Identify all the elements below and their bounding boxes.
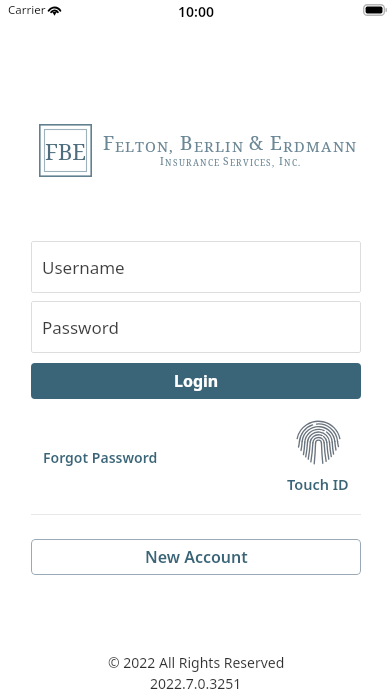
staticText: E [230, 157, 236, 168]
staticText: R [283, 136, 294, 156]
staticText: L [215, 136, 225, 156]
staticText: E [260, 157, 266, 168]
staticText: S [173, 157, 179, 168]
button[interactable]: Login [31, 363, 361, 399]
staticText: N [157, 136, 169, 156]
staticText: N [200, 157, 208, 168]
staticText: R [204, 136, 215, 156]
staticText: R [186, 157, 193, 168]
staticText: V [243, 157, 250, 168]
staticText: E [214, 157, 220, 168]
staticText: F [103, 130, 115, 156]
staticText: D [294, 136, 306, 156]
staticText: T [135, 136, 145, 156]
staticText: , [272, 157, 275, 168]
staticText: C [292, 157, 298, 168]
button[interactable]: Username [31, 241, 361, 293]
staticText: Password [42, 316, 119, 339]
staticText: C [254, 157, 260, 168]
staticText: N [345, 136, 357, 156]
staticText: E [270, 130, 283, 156]
staticText: L [125, 136, 135, 156]
staticText: Touch ID [287, 474, 349, 494]
button[interactable]: New Account [31, 539, 361, 575]
staticText: O [145, 136, 157, 156]
staticText: S [266, 157, 272, 168]
button[interactable]: Forgot Password [36, 444, 165, 471]
staticText: N [333, 136, 345, 156]
staticText: © 2022 All Rights Reserved [108, 653, 285, 672]
staticText: N [232, 136, 244, 156]
staticText: & [249, 130, 264, 156]
staticText: E [115, 136, 125, 156]
staticText: Username [42, 256, 125, 279]
staticText: I [225, 136, 232, 156]
staticText: R [236, 157, 243, 168]
staticText: U [179, 157, 186, 168]
staticText: Forgot Password [43, 448, 158, 467]
staticText: I [250, 157, 254, 168]
staticText: . [298, 157, 301, 168]
staticText: I [279, 154, 284, 168]
staticText: S [223, 154, 230, 168]
staticText: A [193, 157, 200, 168]
staticText: M [306, 136, 321, 156]
button[interactable]: Password [31, 301, 361, 353]
staticText: E [194, 136, 204, 156]
staticText: N [284, 157, 292, 168]
staticText: B [180, 130, 194, 156]
staticText: Carrier [8, 2, 46, 18]
staticText: , [169, 136, 174, 156]
staticText: N [165, 157, 173, 168]
staticText: A [321, 136, 333, 156]
staticText: 2022.7.0.3251 [150, 674, 242, 693]
staticText: FBE [45, 136, 87, 166]
staticText: I [160, 154, 165, 168]
staticText: New Account [145, 546, 248, 568]
staticText: C [208, 157, 214, 168]
staticText: Login [174, 370, 219, 392]
staticText: 10:00 [178, 2, 214, 21]
button[interactable]: Touch ID [283, 421, 353, 494]
